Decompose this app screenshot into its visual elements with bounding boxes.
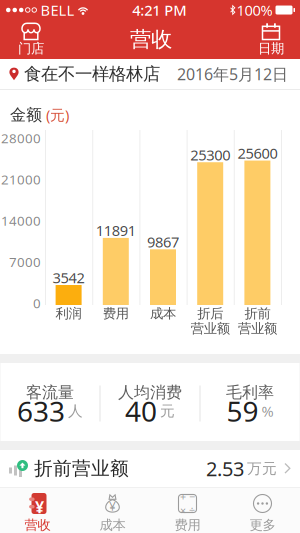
staticText: 633: [17, 392, 65, 430]
staticText: 4:21 PM: [132, 0, 186, 20]
staticText: 3542: [53, 268, 85, 287]
staticText: 2.53: [206, 455, 244, 482]
button[interactable]: 折前营业额: [0, 450, 300, 487]
staticText: 费用: [103, 305, 129, 322]
staticText: 元: [160, 402, 175, 420]
staticText: 营收: [130, 26, 172, 53]
staticText: 折前: [244, 305, 270, 322]
staticText: 门店: [18, 40, 44, 57]
button[interactable]: 更多: [225, 488, 300, 533]
staticText: ¥: [109, 498, 116, 514]
staticText: 14000: [1, 212, 41, 229]
staticText: ×: [180, 503, 186, 518]
staticText: 100%: [236, 0, 272, 20]
staticText: 营收: [24, 517, 50, 533]
staticText: 费用: [174, 517, 200, 533]
staticText: 25600: [237, 143, 277, 163]
staticText: 人均消费: [118, 383, 182, 402]
staticText: 0: [33, 294, 41, 312]
staticText: 折前营业额: [34, 457, 129, 480]
staticText: 21000: [1, 170, 41, 188]
staticText: 客流量: [26, 383, 74, 402]
staticText: 人: [68, 402, 83, 420]
staticText: +: [180, 489, 186, 503]
staticText: −: [189, 489, 195, 503]
staticText: 25300: [190, 145, 230, 164]
button[interactable]: 营收: [0, 488, 75, 533]
button[interactable]: 门店: [5, 20, 57, 59]
staticText: 万元: [247, 459, 277, 477]
staticText: 2016年5月12日: [177, 63, 288, 85]
staticText: 更多: [249, 517, 275, 533]
staticText: 食在不一样格林店: [24, 63, 160, 85]
button[interactable]: 费用: [150, 488, 225, 533]
staticText: 59: [226, 392, 258, 430]
staticText: 成本: [150, 305, 176, 322]
staticText: 折后: [197, 305, 223, 322]
staticText: ¥: [35, 496, 44, 518]
button[interactable]: 成本: [75, 488, 150, 533]
staticText: 28000: [1, 129, 41, 147]
staticText: 9867: [147, 232, 179, 252]
staticText: %: [261, 401, 273, 421]
staticText: (元): [42, 105, 69, 125]
staticText: 成本: [99, 517, 125, 533]
staticText: 7000: [9, 253, 41, 271]
staticText: 日期: [258, 40, 284, 57]
staticText: 金额: [10, 105, 42, 125]
staticText: 营业额: [238, 320, 277, 337]
staticText: BELL: [40, 0, 74, 20]
staticText: ÷: [189, 503, 195, 518]
button[interactable]: 日期: [245, 20, 297, 59]
staticText: 营业额: [191, 320, 230, 337]
staticText: 利润: [56, 305, 82, 322]
staticText: 毛利率: [226, 383, 274, 402]
staticText: 11891: [96, 221, 136, 240]
staticText: 40: [125, 392, 157, 430]
